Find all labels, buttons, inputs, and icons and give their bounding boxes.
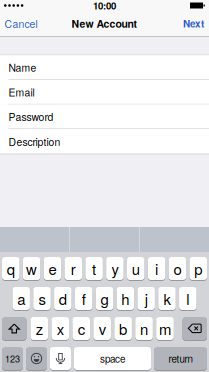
button[interactable]: Delete	[182, 317, 207, 340]
staticText: d	[59, 288, 67, 309]
staticText: z	[36, 318, 43, 339]
button[interactable]: g	[96, 287, 113, 310]
button[interactable]: Password	[0, 104, 209, 129]
staticText: p	[194, 258, 202, 279]
button[interactable]: w	[23, 257, 40, 280]
button[interactable]: Email	[0, 80, 209, 104]
button[interactable]: f	[75, 287, 92, 310]
staticText: x	[57, 318, 64, 339]
button[interactable]: b	[114, 317, 132, 340]
staticText: Next	[183, 16, 204, 31]
button[interactable]: c	[72, 317, 90, 340]
button[interactable]: v	[93, 317, 111, 340]
button[interactable]: i	[148, 257, 165, 280]
staticText: q	[7, 258, 15, 279]
button[interactable]: d	[54, 287, 72, 310]
button[interactable]: Name	[0, 55, 209, 80]
staticText: 123	[5, 352, 20, 365]
staticText: Description	[8, 134, 60, 149]
staticText: return	[168, 351, 192, 365]
staticText: t	[92, 258, 96, 279]
staticText: r	[71, 258, 76, 279]
button[interactable]: Emoji	[26, 347, 47, 370]
staticText: e	[48, 258, 56, 279]
staticText: o	[173, 258, 181, 279]
button[interactable]: e	[44, 257, 61, 280]
button[interactable]: n	[135, 317, 153, 340]
staticText: h	[121, 288, 129, 309]
staticText: u	[132, 258, 140, 279]
button[interactable]: y	[106, 257, 124, 280]
button[interactable]: t	[85, 257, 103, 280]
button[interactable]: Dictate	[50, 347, 71, 370]
button[interactable]: u	[127, 257, 144, 280]
staticText: i	[155, 258, 158, 279]
button[interactable]: p	[189, 257, 207, 280]
staticText: Email	[8, 84, 34, 99]
staticText: f	[82, 288, 86, 309]
button[interactable]: Cancel	[4, 16, 37, 31]
button[interactable]: s	[33, 287, 51, 310]
staticText: space	[100, 351, 125, 365]
staticText: 10:00	[93, 0, 116, 12]
staticText: Name	[8, 60, 36, 75]
button[interactable]: q	[2, 257, 19, 280]
staticText: v	[99, 318, 106, 339]
staticText: Cancel	[4, 16, 37, 31]
button[interactable]: j	[137, 287, 155, 310]
staticText: w	[26, 258, 37, 279]
button[interactable]: m	[156, 317, 174, 340]
staticText: y	[111, 258, 118, 279]
button[interactable]: r	[64, 257, 82, 280]
staticText: k	[163, 288, 170, 309]
button[interactable]: z	[30, 317, 48, 340]
staticText: g	[100, 288, 108, 309]
button[interactable]: o	[169, 257, 186, 280]
button[interactable]: Return	[154, 347, 207, 370]
button[interactable]: Next	[183, 16, 204, 31]
button[interactable]: x	[51, 317, 69, 340]
button[interactable]: l	[179, 287, 197, 310]
staticText: Password	[8, 109, 53, 124]
button[interactable]: k	[158, 287, 176, 310]
staticText: c	[78, 318, 85, 339]
button[interactable]: space	[74, 347, 151, 370]
button[interactable]: Numbers	[2, 347, 23, 370]
staticText: l	[186, 288, 189, 309]
staticText: s	[38, 288, 45, 309]
button[interactable]: a	[12, 287, 30, 310]
staticText: n	[140, 318, 148, 339]
staticText: j	[145, 288, 148, 309]
staticText: New Account	[71, 16, 137, 31]
staticText: a	[17, 288, 25, 309]
staticText: m	[159, 318, 171, 339]
staticText: b	[119, 318, 127, 339]
button[interactable]: h	[117, 287, 134, 310]
button[interactable]: Shift	[2, 317, 26, 340]
button[interactable]: Description	[0, 129, 209, 154]
